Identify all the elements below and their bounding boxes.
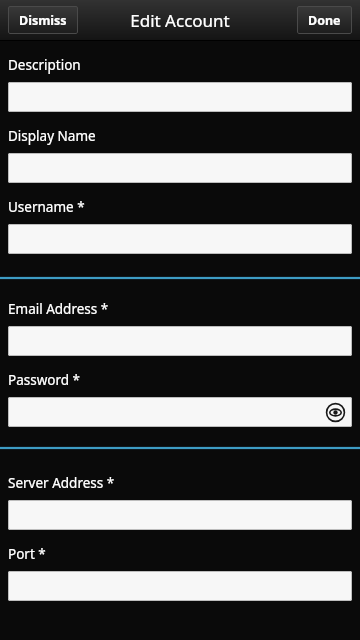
button[interactable]: Show password (324, 401, 346, 423)
staticText: Done (308, 12, 341, 29)
staticText: Email Address * (8, 300, 109, 318)
button[interactable] (8, 82, 352, 112)
staticText: Display Name (8, 127, 96, 145)
button[interactable]: Show password (8, 397, 352, 427)
staticText: Server Address * (8, 474, 115, 492)
button[interactable] (8, 500, 352, 530)
staticText: Dismiss (19, 12, 67, 29)
button[interactable]: Done (297, 6, 352, 34)
button[interactable] (8, 224, 352, 254)
button[interactable] (8, 571, 352, 601)
staticText: Username * (8, 198, 85, 216)
staticText: Password * (8, 371, 81, 389)
button[interactable] (8, 326, 352, 356)
staticText: Description (8, 56, 81, 74)
staticText: Edit Account (0, 9, 360, 32)
button[interactable]: Dismiss (8, 6, 78, 34)
staticText: Port * (8, 545, 46, 563)
button[interactable] (8, 153, 352, 183)
